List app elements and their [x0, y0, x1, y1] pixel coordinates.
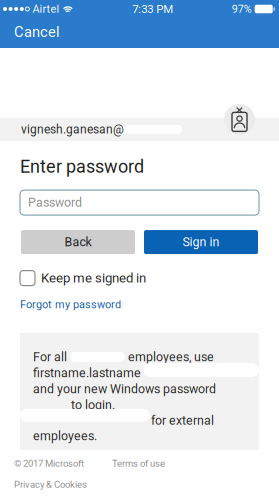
staticText: Password [28, 195, 82, 210]
staticText: for external [151, 413, 214, 428]
button[interactable]: Cancel [0, 19, 72, 47]
staticText: vignesh.ganesan@ [21, 122, 124, 137]
staticText: and your new Windows password [33, 382, 216, 396]
staticText: employees, use [125, 350, 214, 364]
staticText: firstname.lastname [33, 366, 141, 380]
staticText: Airtel [29, 3, 62, 15]
staticText: employees. [33, 429, 97, 443]
staticText: 7:33 PM [132, 2, 173, 16]
button[interactable]: Forgot my password [0, 296, 121, 313]
staticText: to login. [71, 398, 115, 412]
button[interactable]: Keep me signed in [0, 269, 279, 287]
button[interactable]: Terms of use [112, 458, 165, 469]
staticText: 97% [232, 3, 255, 15]
staticText: © 2017 Microsoft [14, 458, 84, 469]
button[interactable]: Sign in [144, 230, 258, 254]
staticText: Privacy & Cookies [14, 479, 87, 490]
staticText: Back [64, 235, 91, 249]
staticText: Enter password [20, 156, 144, 177]
button[interactable]: Switch account [224, 104, 255, 135]
staticText: Forgot my password [20, 298, 121, 311]
staticText: Cancel [14, 23, 60, 41]
staticText: For all [33, 350, 70, 364]
button[interactable]: Back [21, 230, 135, 254]
button[interactable]: Privacy & Cookies [14, 479, 87, 490]
staticText: Keep me signed in [41, 270, 146, 286]
staticText: Sign in [182, 235, 219, 249]
staticText: Terms of use [112, 458, 165, 469]
